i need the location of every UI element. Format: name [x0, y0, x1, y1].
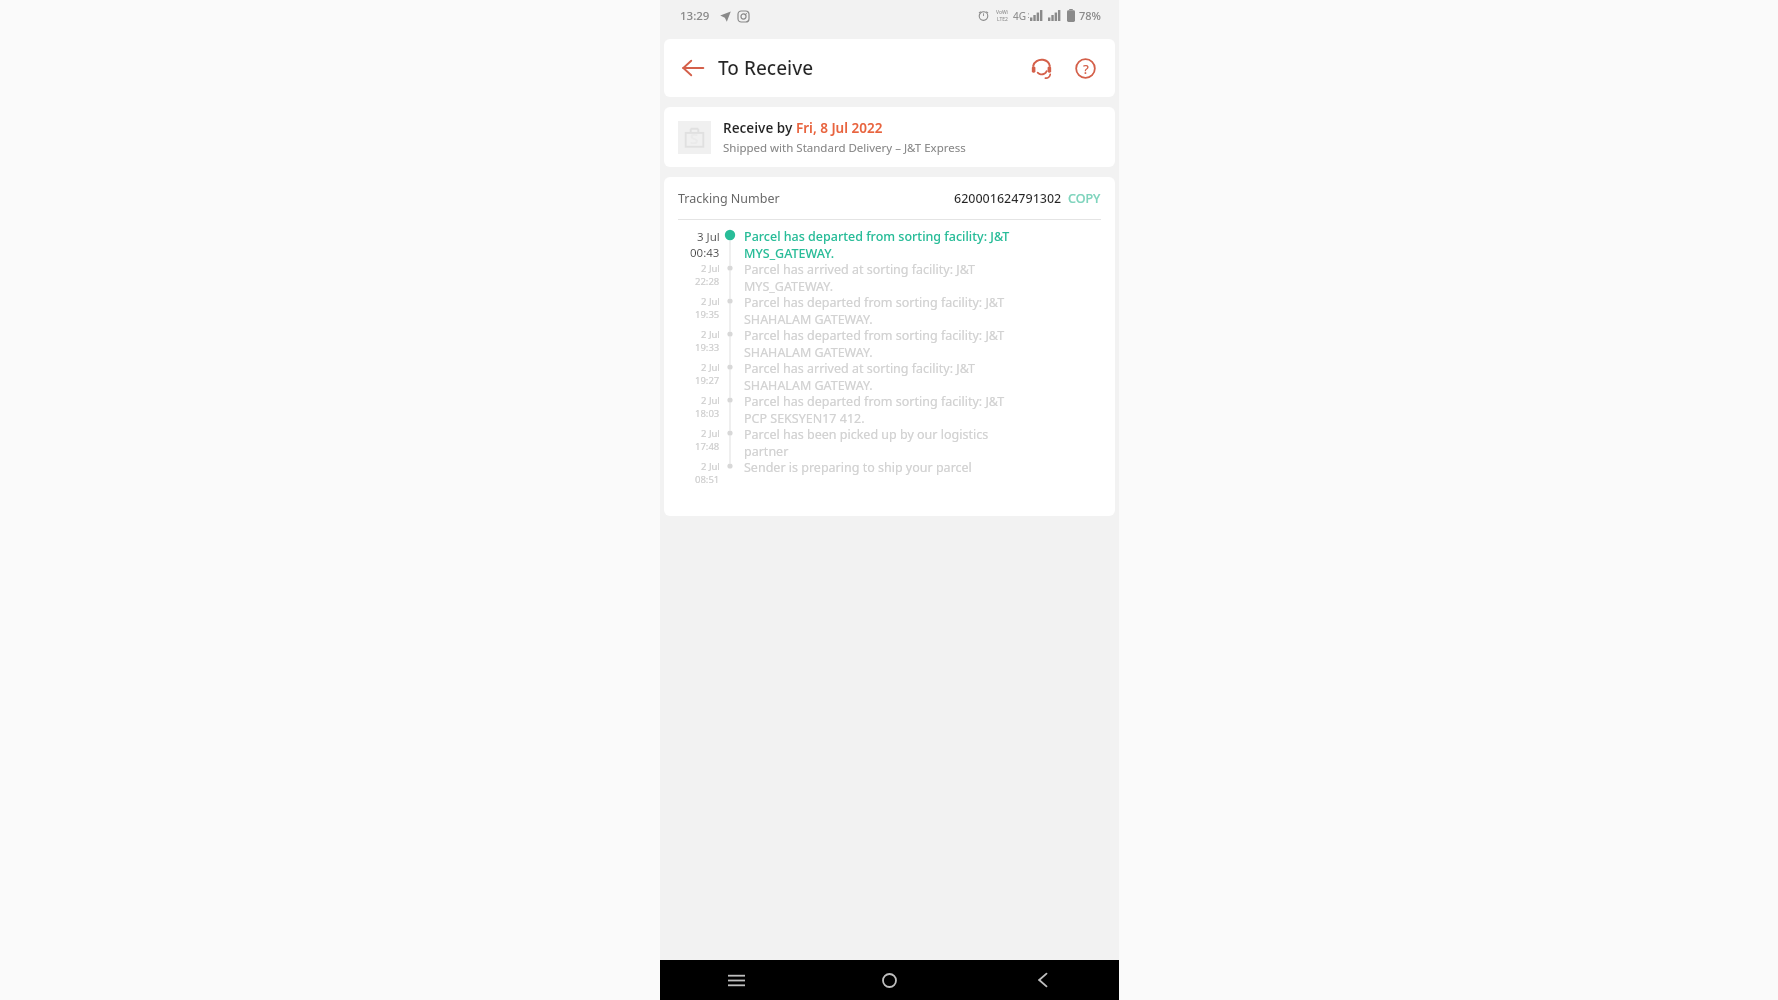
staticText: 78% — [1079, 8, 1101, 23]
staticText: Parcel has been picked up by our logisti… — [744, 426, 989, 443]
staticText: 2 Jul — [701, 394, 720, 407]
staticText: Parcel has arrived at sorting facility: … — [744, 261, 976, 278]
staticText: To Receive — [718, 55, 814, 81]
button[interactable]: Back — [674, 49, 712, 87]
staticText: 13:29 — [680, 8, 710, 24]
staticText: 2 Jul — [701, 328, 720, 341]
button[interactable]: COPY — [1068, 190, 1101, 207]
button[interactable]: Customer support — [1021, 48, 1061, 88]
staticText: 3 Jul — [697, 229, 720, 245]
staticText: Parcel has departed from sorting facilit… — [744, 327, 1005, 344]
staticText: 00:43 — [690, 245, 720, 261]
staticText: SHAHALAM GATEWAY. — [744, 311, 873, 327]
staticText: 2 Jul — [701, 262, 720, 275]
staticText: 2 Jul — [701, 427, 720, 440]
staticText: 2 Jul — [701, 460, 720, 473]
staticText: 19:35 — [695, 308, 720, 321]
staticText: 2 Jul — [701, 295, 720, 308]
staticText: Parcel has arrived at sorting facility: … — [744, 360, 976, 377]
button[interactable]: Home — [813, 960, 966, 1000]
staticText: Parcel has departed from sorting facilit… — [744, 393, 1005, 410]
staticText: 08:51 — [695, 473, 720, 486]
staticText: ? — [1083, 60, 1089, 78]
staticText: LTE2 — [997, 16, 1008, 23]
staticText: 4G — [1013, 9, 1026, 23]
staticText: partner — [744, 443, 789, 459]
button[interactable]: Recent apps — [660, 960, 813, 1000]
staticText: VoWi — [996, 9, 1008, 16]
staticText: PCP SEKSYEN17 412. — [744, 410, 865, 426]
staticText: 18:03 — [695, 407, 720, 420]
staticText: COPY — [1068, 190, 1101, 207]
staticText: Shipped with Standard Delivery – J&T Exp… — [723, 140, 966, 156]
button[interactable]: Help — [1065, 48, 1105, 88]
staticText: Parcel has departed from sorting facilit… — [744, 294, 1005, 311]
staticText: 22:28 — [695, 275, 720, 288]
staticText: 19:27 — [695, 374, 720, 387]
staticText: SHAHALAM GATEWAY. — [744, 377, 873, 393]
staticText: S — [690, 128, 699, 148]
staticText: MYS_GATEWAY. — [744, 278, 833, 294]
staticText: 620001624791302 — [954, 190, 1062, 207]
staticText: Parcel has departed from sorting facilit… — [744, 228, 1010, 245]
button[interactable]: Back — [966, 960, 1119, 1000]
staticText: Tracking Number — [678, 190, 780, 207]
staticText: Fri, 8 Jul 2022 — [796, 119, 883, 137]
staticText: 19:33 — [695, 341, 720, 354]
staticText: 2 Jul — [701, 361, 720, 374]
staticText: SHAHALAM GATEWAY. — [744, 344, 873, 360]
staticText: Receive by — [723, 119, 796, 137]
staticText: Sender is preparing to ship your parcel — [744, 459, 972, 476]
staticText: MYS_GATEWAY. — [744, 245, 835, 261]
staticText: 17:48 — [695, 440, 720, 453]
button[interactable]: S — [664, 107, 1115, 167]
